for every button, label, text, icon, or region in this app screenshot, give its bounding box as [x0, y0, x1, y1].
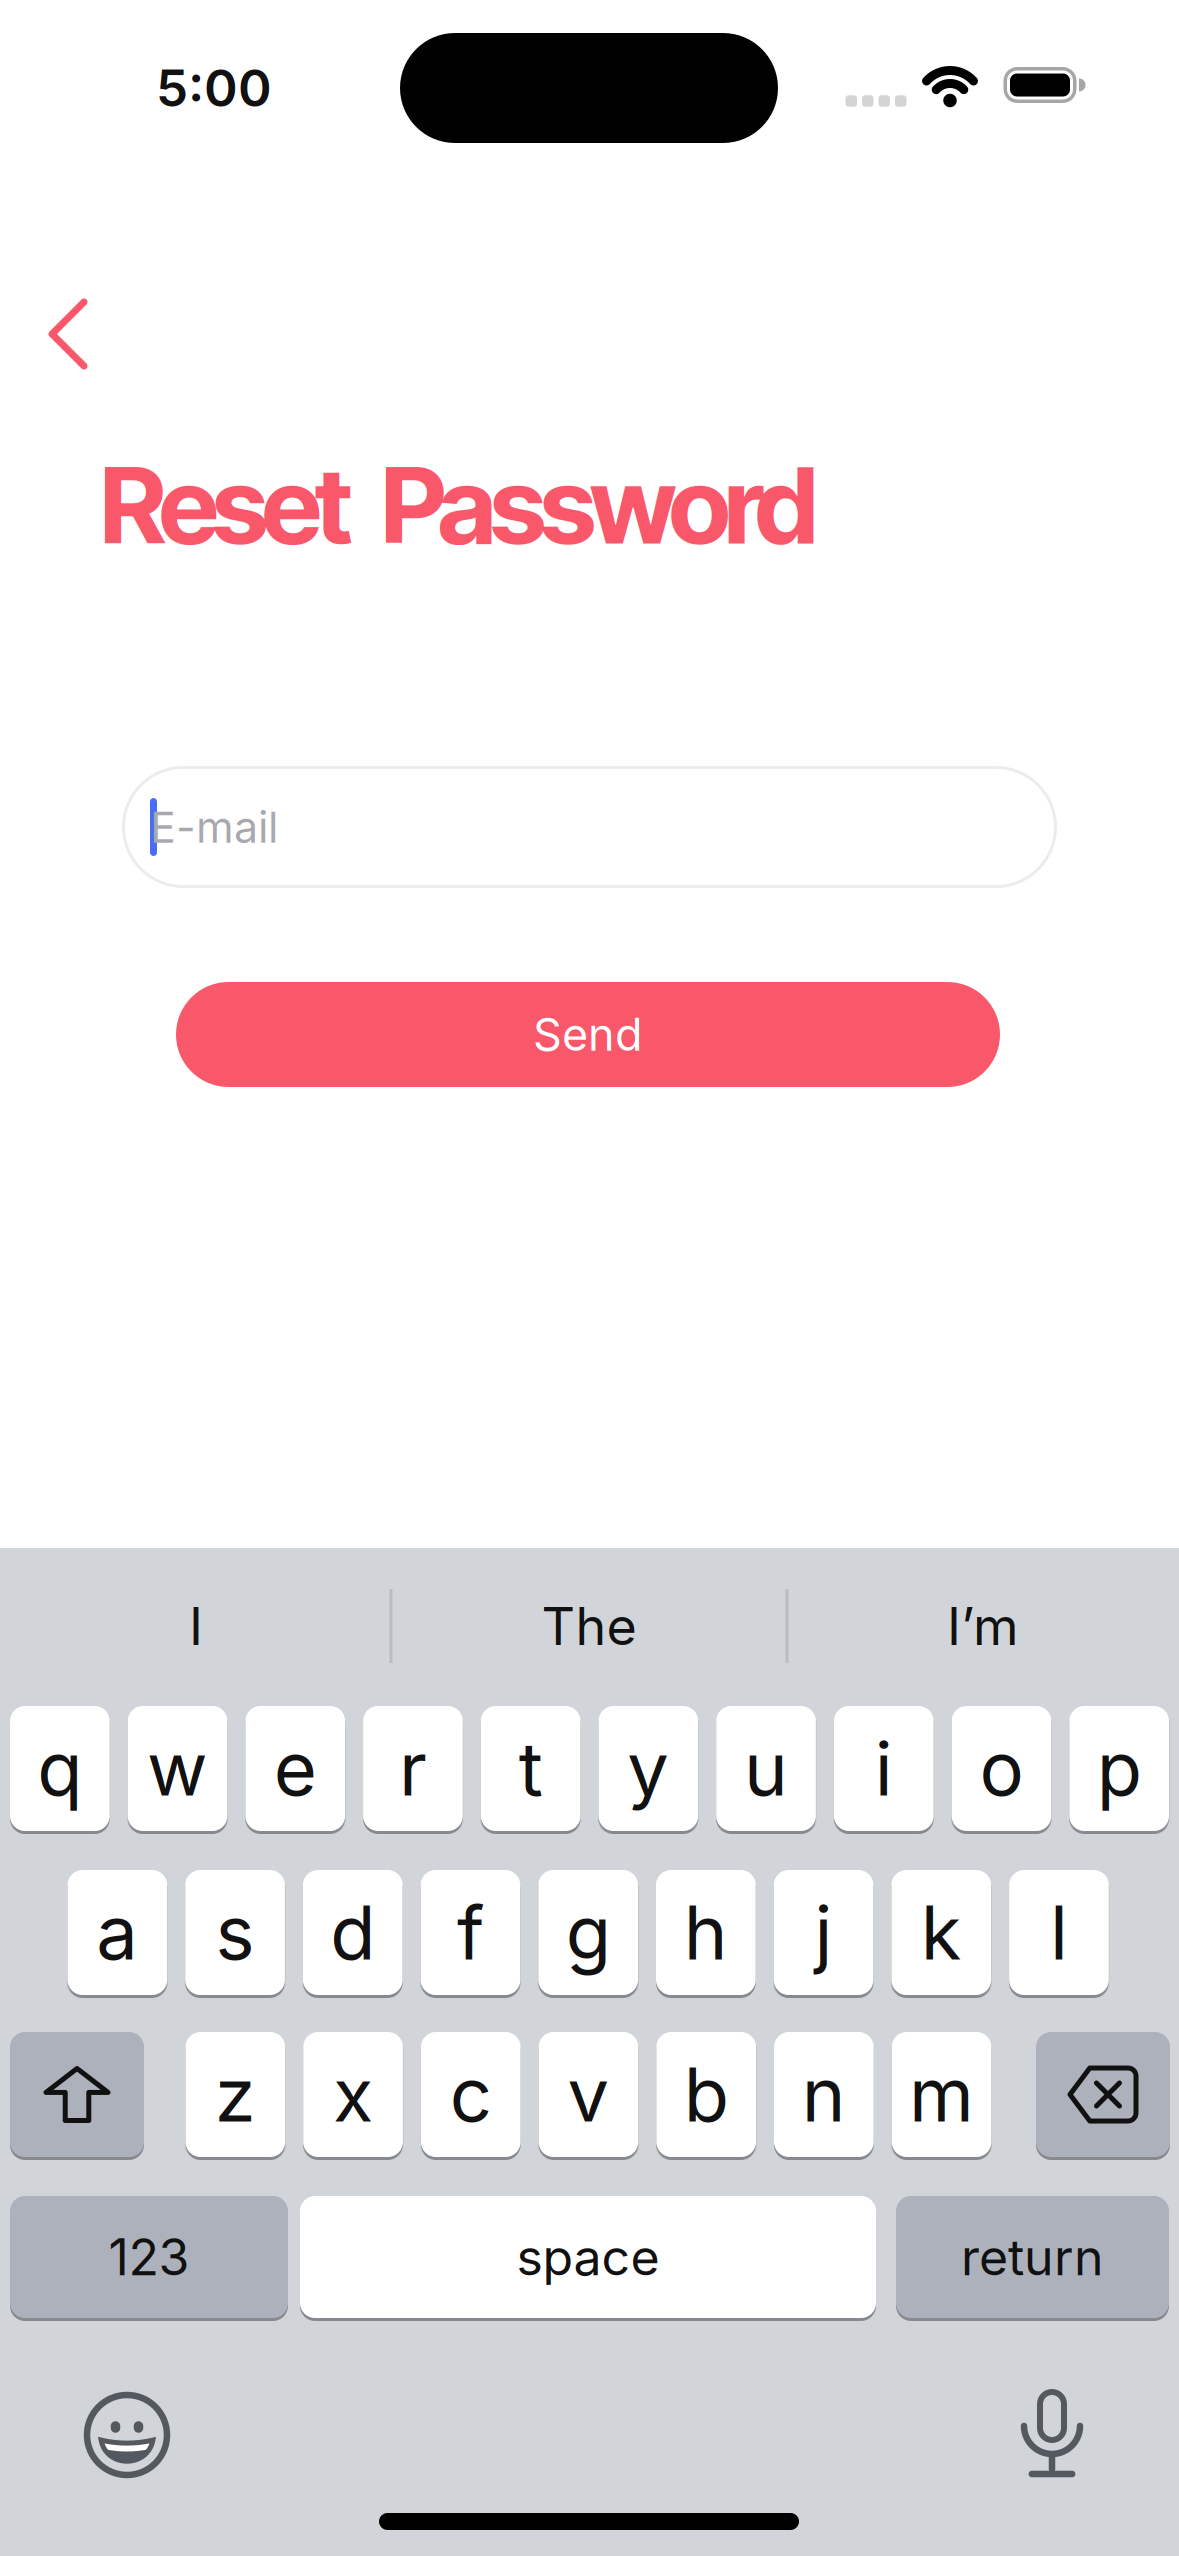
staticText: 5:00 [156, 57, 272, 119]
button[interactable]: r [363, 1706, 463, 1831]
staticText: m [909, 2050, 974, 2139]
button[interactable]: Back [23, 289, 113, 379]
staticText: w [147, 1724, 208, 1813]
button[interactable]: d [303, 1870, 403, 1995]
staticText: space [516, 2227, 659, 2287]
button[interactable]: y [598, 1706, 698, 1831]
staticText: t [519, 1724, 543, 1813]
button[interactable]: I [6, 1581, 386, 1671]
staticText: h [684, 1888, 728, 1977]
button[interactable]: Shift [10, 2032, 144, 2157]
staticText: Send [533, 1007, 643, 1062]
button[interactable]: c [421, 2032, 521, 2157]
button[interactable]: Send [176, 982, 1000, 1087]
button[interactable]: o [952, 1706, 1051, 1831]
button[interactable]: l [1009, 1870, 1109, 1995]
staticText: o [979, 1724, 1023, 1813]
staticText: j [815, 1888, 833, 1977]
staticText: k [921, 1888, 962, 1977]
button[interactable]: q [10, 1706, 110, 1831]
button[interactable]: k [891, 1870, 991, 1995]
button[interactable]: n [774, 2032, 874, 2157]
staticText: y [627, 1724, 669, 1813]
button[interactable]: The [399, 1581, 779, 1671]
button[interactable]: i [834, 1706, 934, 1831]
staticText: i [875, 1724, 893, 1813]
staticText: z [215, 2050, 256, 2139]
staticText: return [961, 2227, 1104, 2287]
button[interactable]: x [303, 2032, 403, 2157]
button[interactable]: p [1069, 1706, 1169, 1831]
button[interactable]: h [656, 1870, 756, 1995]
button[interactable]: f [421, 1870, 520, 1995]
staticText: E-mail [150, 801, 278, 853]
staticText: u [744, 1724, 788, 1813]
button[interactable]: s [185, 1870, 285, 1995]
staticText: l [1050, 1888, 1068, 1977]
staticText: x [333, 2050, 373, 2139]
button[interactable]: g [538, 1870, 638, 1995]
button[interactable]: e [245, 1706, 345, 1831]
staticText: n [802, 2050, 846, 2139]
staticText: I [189, 1594, 203, 1657]
button[interactable]: b [656, 2032, 756, 2157]
staticText: The [541, 1594, 636, 1657]
staticText: 123 [108, 2227, 189, 2287]
staticText: a [96, 1888, 138, 1977]
button[interactable]: 123 [10, 2196, 288, 2318]
staticText: e [274, 1724, 317, 1813]
staticText: g [566, 1888, 611, 1977]
staticText: b [684, 2050, 729, 2139]
button[interactable]: I’m [793, 1581, 1173, 1671]
button[interactable]: z [185, 2032, 285, 2157]
button[interactable]: v [539, 2032, 638, 2157]
staticText: c [450, 2050, 492, 2139]
button[interactable]: j [774, 1870, 873, 1995]
staticText: Password [381, 441, 818, 569]
button[interactable]: Dictation [1024, 2388, 1080, 2478]
button[interactable]: u [716, 1706, 816, 1831]
button[interactable]: t [481, 1706, 580, 1831]
button[interactable]: return [896, 2196, 1169, 2318]
button[interactable]: space [300, 2196, 876, 2318]
button[interactable]: w [128, 1706, 227, 1831]
button[interactable]: Delete [1036, 2032, 1170, 2157]
staticText: v [567, 2050, 609, 2139]
button[interactable]: m [892, 2032, 991, 2157]
staticText: r [399, 1724, 427, 1813]
staticText: s [216, 1888, 255, 1977]
staticText: p [1097, 1724, 1142, 1813]
staticText: d [330, 1888, 375, 1977]
staticText: Reset [100, 441, 353, 569]
staticText: I’m [947, 1594, 1019, 1657]
staticText: q [37, 1724, 82, 1813]
button[interactable]: E-mail [122, 766, 1057, 888]
staticText: f [457, 1888, 484, 1977]
button[interactable]: a [67, 1870, 167, 1995]
button[interactable]: Emoji [77, 2385, 177, 2485]
